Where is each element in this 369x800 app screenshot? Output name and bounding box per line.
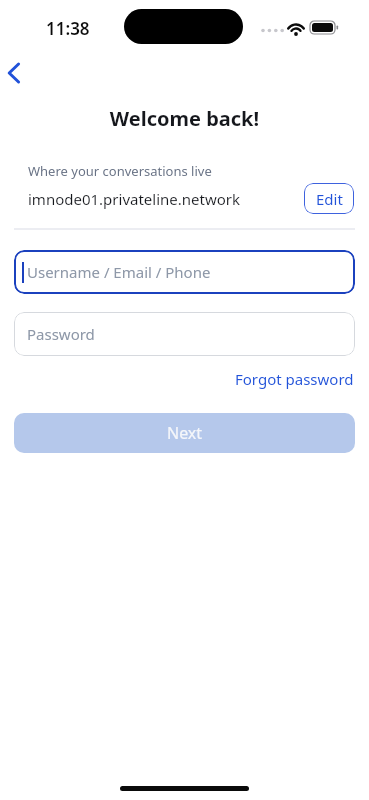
button[interactable]: Username / Email / Phone: [14, 250, 355, 294]
button[interactable]: Password: [14, 312, 355, 356]
staticText: Username / Email / Phone: [27, 262, 211, 282]
staticText: Edit: [316, 189, 343, 209]
button[interactable]: [0, 56, 31, 90]
staticText: Where your conversations live: [28, 162, 212, 180]
button[interactable]: Forgot password: [235, 369, 354, 389]
staticText: Welcome back!: [0, 105, 369, 132]
staticText: Next: [167, 422, 203, 444]
staticText: Password: [27, 324, 95, 344]
staticText: imnode01.privateline.network: [28, 189, 241, 209]
staticText: 11:38: [46, 17, 90, 40]
button[interactable]: Edit: [304, 183, 354, 214]
staticText: Forgot password: [235, 369, 354, 389]
button[interactable]: Next: [14, 413, 355, 453]
